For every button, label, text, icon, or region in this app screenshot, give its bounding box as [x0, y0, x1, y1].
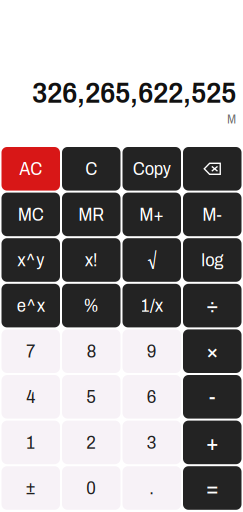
button[interactable]: 8: [62, 329, 120, 373]
button[interactable]: √: [122, 238, 181, 282]
button[interactable]: Delete: [183, 147, 241, 191]
button[interactable]: 1/x: [122, 284, 181, 327]
staticText: x!: [85, 250, 98, 270]
button[interactable]: e^x: [1, 284, 60, 327]
button[interactable]: %: [62, 284, 120, 327]
button[interactable]: -: [183, 375, 241, 419]
button[interactable]: 4: [1, 375, 60, 419]
staticText: 6: [147, 387, 157, 407]
staticText: ×: [206, 339, 219, 364]
button[interactable]: M+: [122, 193, 181, 236]
staticText: +: [206, 430, 219, 455]
button[interactable]: AC: [1, 147, 60, 191]
staticText: 4: [26, 387, 35, 407]
staticText: 326,265,622,525: [32, 77, 236, 109]
button[interactable]: .: [122, 466, 181, 510]
staticText: 1/x: [141, 295, 163, 316]
staticText: 9: [147, 341, 157, 361]
button[interactable]: Copy: [122, 147, 181, 191]
staticText: .: [149, 478, 154, 498]
staticText: AC: [19, 159, 42, 179]
button[interactable]: 3: [122, 421, 181, 464]
button[interactable]: 2: [62, 421, 120, 464]
staticText: Copy: [133, 159, 171, 179]
staticText: 0: [86, 478, 96, 498]
staticText: MR: [78, 204, 104, 224]
staticText: x^y: [17, 250, 44, 270]
button[interactable]: 1: [1, 421, 60, 464]
button[interactable]: M-: [183, 193, 241, 236]
button[interactable]: +: [183, 421, 241, 464]
button[interactable]: 0: [62, 466, 120, 510]
button[interactable]: C: [62, 147, 120, 191]
button[interactable]: x!: [62, 238, 120, 282]
staticText: ÷: [206, 293, 219, 318]
button[interactable]: 5: [62, 375, 120, 419]
button[interactable]: ÷: [183, 284, 241, 327]
button[interactable]: ±: [1, 466, 60, 510]
button[interactable]: x^y: [1, 238, 60, 282]
staticText: MC: [18, 204, 44, 224]
button[interactable]: MR: [62, 193, 120, 236]
button[interactable]: 9: [122, 329, 181, 373]
staticText: 5: [86, 387, 96, 407]
staticText: 2: [86, 432, 96, 452]
button[interactable]: =: [183, 466, 241, 510]
staticText: √: [147, 250, 156, 270]
staticText: 3: [147, 432, 157, 452]
staticText: 8: [87, 341, 96, 361]
button[interactable]: 7: [1, 329, 60, 373]
staticText: M-: [202, 204, 222, 224]
staticText: e^x: [17, 295, 45, 316]
staticText: 1: [26, 432, 35, 452]
button[interactable]: 6: [122, 375, 181, 419]
staticText: -: [209, 384, 216, 409]
staticText: log: [201, 250, 223, 270]
button[interactable]: ×: [183, 329, 241, 373]
staticText: =: [206, 476, 219, 500]
staticText: %: [83, 295, 99, 316]
staticText: M+: [139, 204, 164, 224]
button[interactable]: MC: [1, 193, 60, 236]
staticText: ±: [25, 478, 36, 498]
staticText: M: [227, 113, 236, 126]
button[interactable]: log: [183, 238, 241, 282]
staticText: C: [85, 159, 97, 179]
staticText: 7: [26, 341, 35, 361]
